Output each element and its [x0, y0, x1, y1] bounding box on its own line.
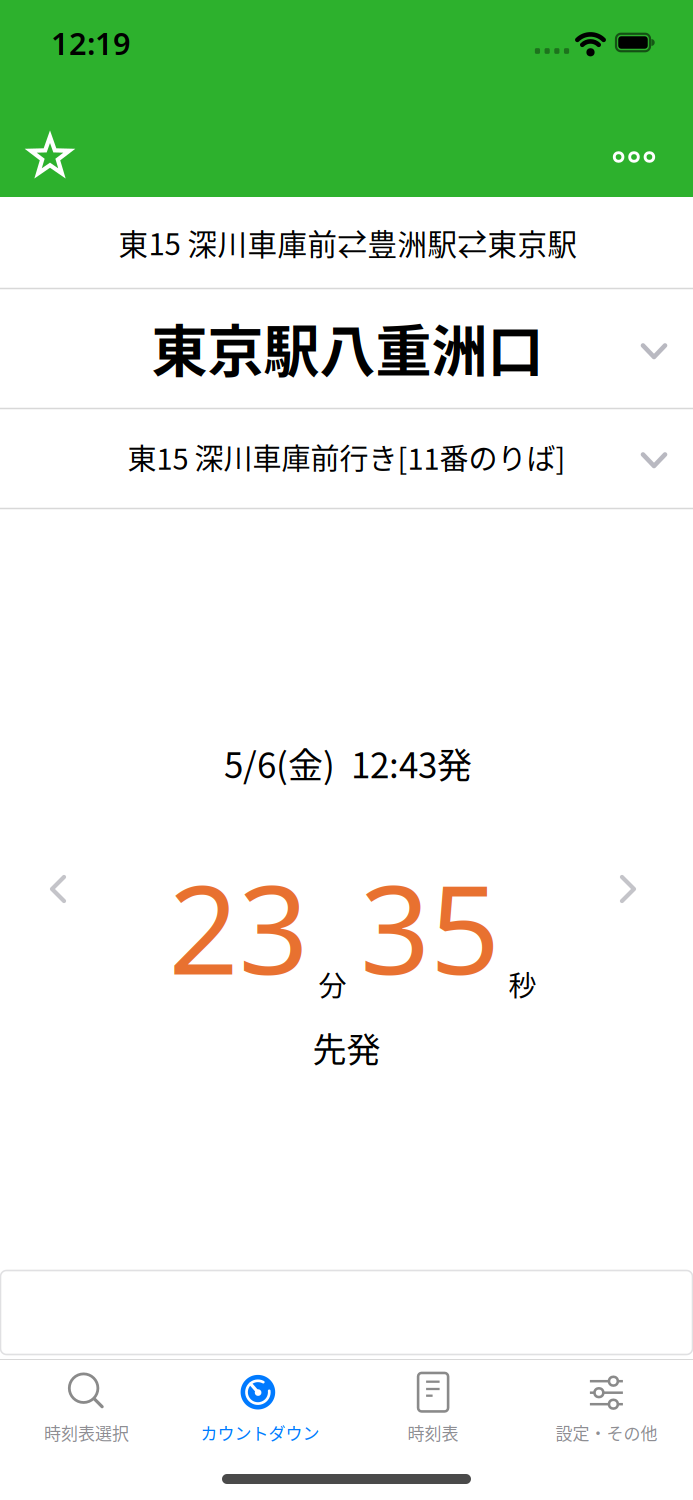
- staticText: 12:19: [51, 23, 131, 63]
- button[interactable]: 設定・その他: [520, 1367, 692, 1453]
- button[interactable]: 東京駅八重洲口: [0, 289, 693, 409]
- button[interactable]: 東15 深川車庫前行き[11番のりば]: [0, 408, 693, 508]
- staticText: 時刻表: [408, 1420, 459, 1445]
- staticText: 5/6(金) 12:43発: [224, 738, 472, 788]
- staticText: 先発: [312, 1023, 380, 1072]
- button[interactable]: Previous departure: [28, 854, 88, 924]
- staticText: カウントダウン: [200, 1420, 319, 1445]
- staticText: 23: [168, 846, 308, 1008]
- staticText: 秒: [508, 964, 536, 1004]
- button[interactable]: More: [599, 135, 669, 179]
- staticText: 分: [318, 964, 346, 1004]
- staticText: 東15 深川車庫前⇄豊洲駅⇄東京駅: [118, 221, 577, 264]
- button[interactable]: Favorite: [15, 122, 85, 192]
- staticText: 東15 深川車庫前行き[11番のりば]: [127, 436, 565, 478]
- staticText: 東京駅八重洲口: [151, 306, 543, 388]
- button[interactable]: カウントダウン: [174, 1367, 346, 1453]
- button[interactable]: Next departure: [598, 854, 658, 924]
- staticText: 時刻表選択: [44, 1420, 129, 1445]
- button[interactable]: 時刻表選択: [1, 1367, 173, 1453]
- staticText: 35: [360, 846, 500, 1008]
- staticText: 設定・その他: [555, 1420, 657, 1445]
- button[interactable]: 時刻表: [347, 1367, 519, 1453]
